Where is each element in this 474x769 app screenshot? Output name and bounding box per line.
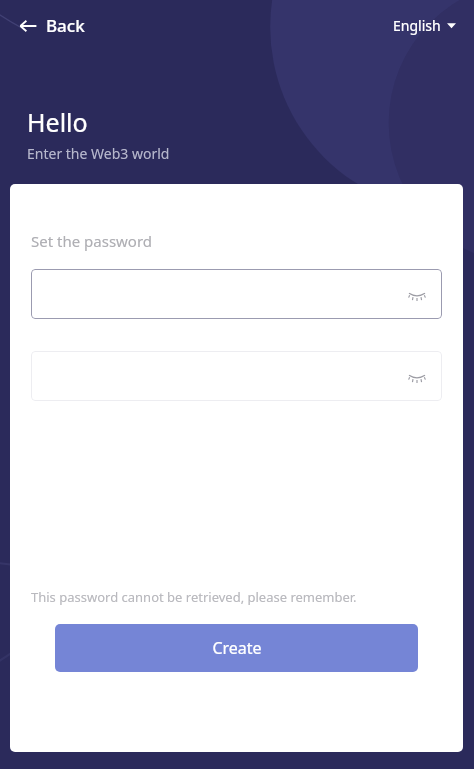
button[interactable]: Back xyxy=(12,10,91,41)
other: Back xyxy=(18,16,38,36)
staticText: English xyxy=(393,16,441,35)
button[interactable]: Show password xyxy=(404,281,430,307)
button[interactable]: Show password xyxy=(31,269,442,319)
button[interactable]: English xyxy=(389,12,460,39)
staticText: Hello xyxy=(27,105,88,139)
button[interactable]: Show password xyxy=(31,351,442,401)
staticText: Set the password xyxy=(31,231,153,251)
staticText: Back xyxy=(46,14,85,37)
staticText: Enter the Web3 world xyxy=(27,144,170,163)
button[interactable]: Show password xyxy=(404,363,430,389)
button[interactable]: Create xyxy=(55,624,418,672)
staticText: This password cannot be retrieved, pleas… xyxy=(31,588,357,606)
staticText: Create xyxy=(212,637,262,659)
